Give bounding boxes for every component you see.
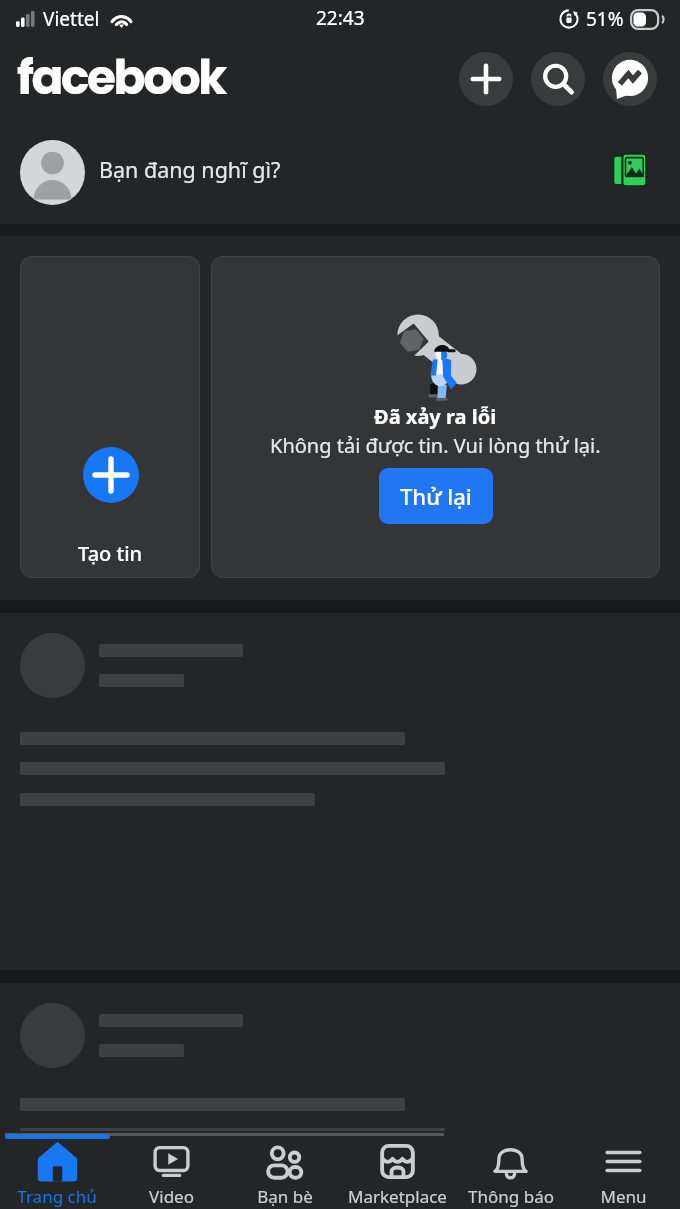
staticText: Bạn đang nghĩ gì? [99, 155, 281, 184]
button[interactable]: Tạo tin [20, 256, 200, 578]
button[interactable]: Create [459, 52, 513, 106]
button[interactable]: Thông báo [454, 1140, 567, 1209]
staticText: Marketplace [348, 1185, 447, 1208]
button[interactable]: Search [531, 52, 585, 106]
button[interactable]: Photo [607, 149, 653, 195]
staticText: Bạn bè [257, 1185, 313, 1208]
staticText: Trang chủ [17, 1185, 97, 1208]
staticText: Thông báo [468, 1185, 554, 1208]
button[interactable]: Marketplace [341, 1140, 454, 1209]
button[interactable]: Bạn bè [228, 1140, 341, 1209]
button[interactable]: Trang chủ [0, 1140, 114, 1209]
button[interactable]: Bạn đang nghĩ gì? [99, 120, 607, 224]
staticText: 22:43 [316, 5, 365, 31]
staticText: Video [149, 1185, 194, 1208]
button[interactable]: Messenger [603, 52, 657, 106]
button[interactable]: Profile [20, 140, 85, 205]
button[interactable]: Video [114, 1140, 228, 1209]
staticText: Không tải được tin. Vui lòng thử lại. [270, 432, 601, 459]
staticText: Tạo tin [78, 540, 143, 567]
button[interactable]: facebook [15, 45, 227, 111]
staticText: Viettel [43, 6, 100, 32]
button[interactable]: Menu [567, 1140, 680, 1209]
staticText: Thử lại [400, 481, 472, 511]
staticText: 51% [586, 6, 624, 32]
staticText: Menu [600, 1185, 647, 1208]
button[interactable]: Thử lại [379, 468, 493, 524]
staticText: Đã xảy ra lỗi [374, 403, 497, 430]
